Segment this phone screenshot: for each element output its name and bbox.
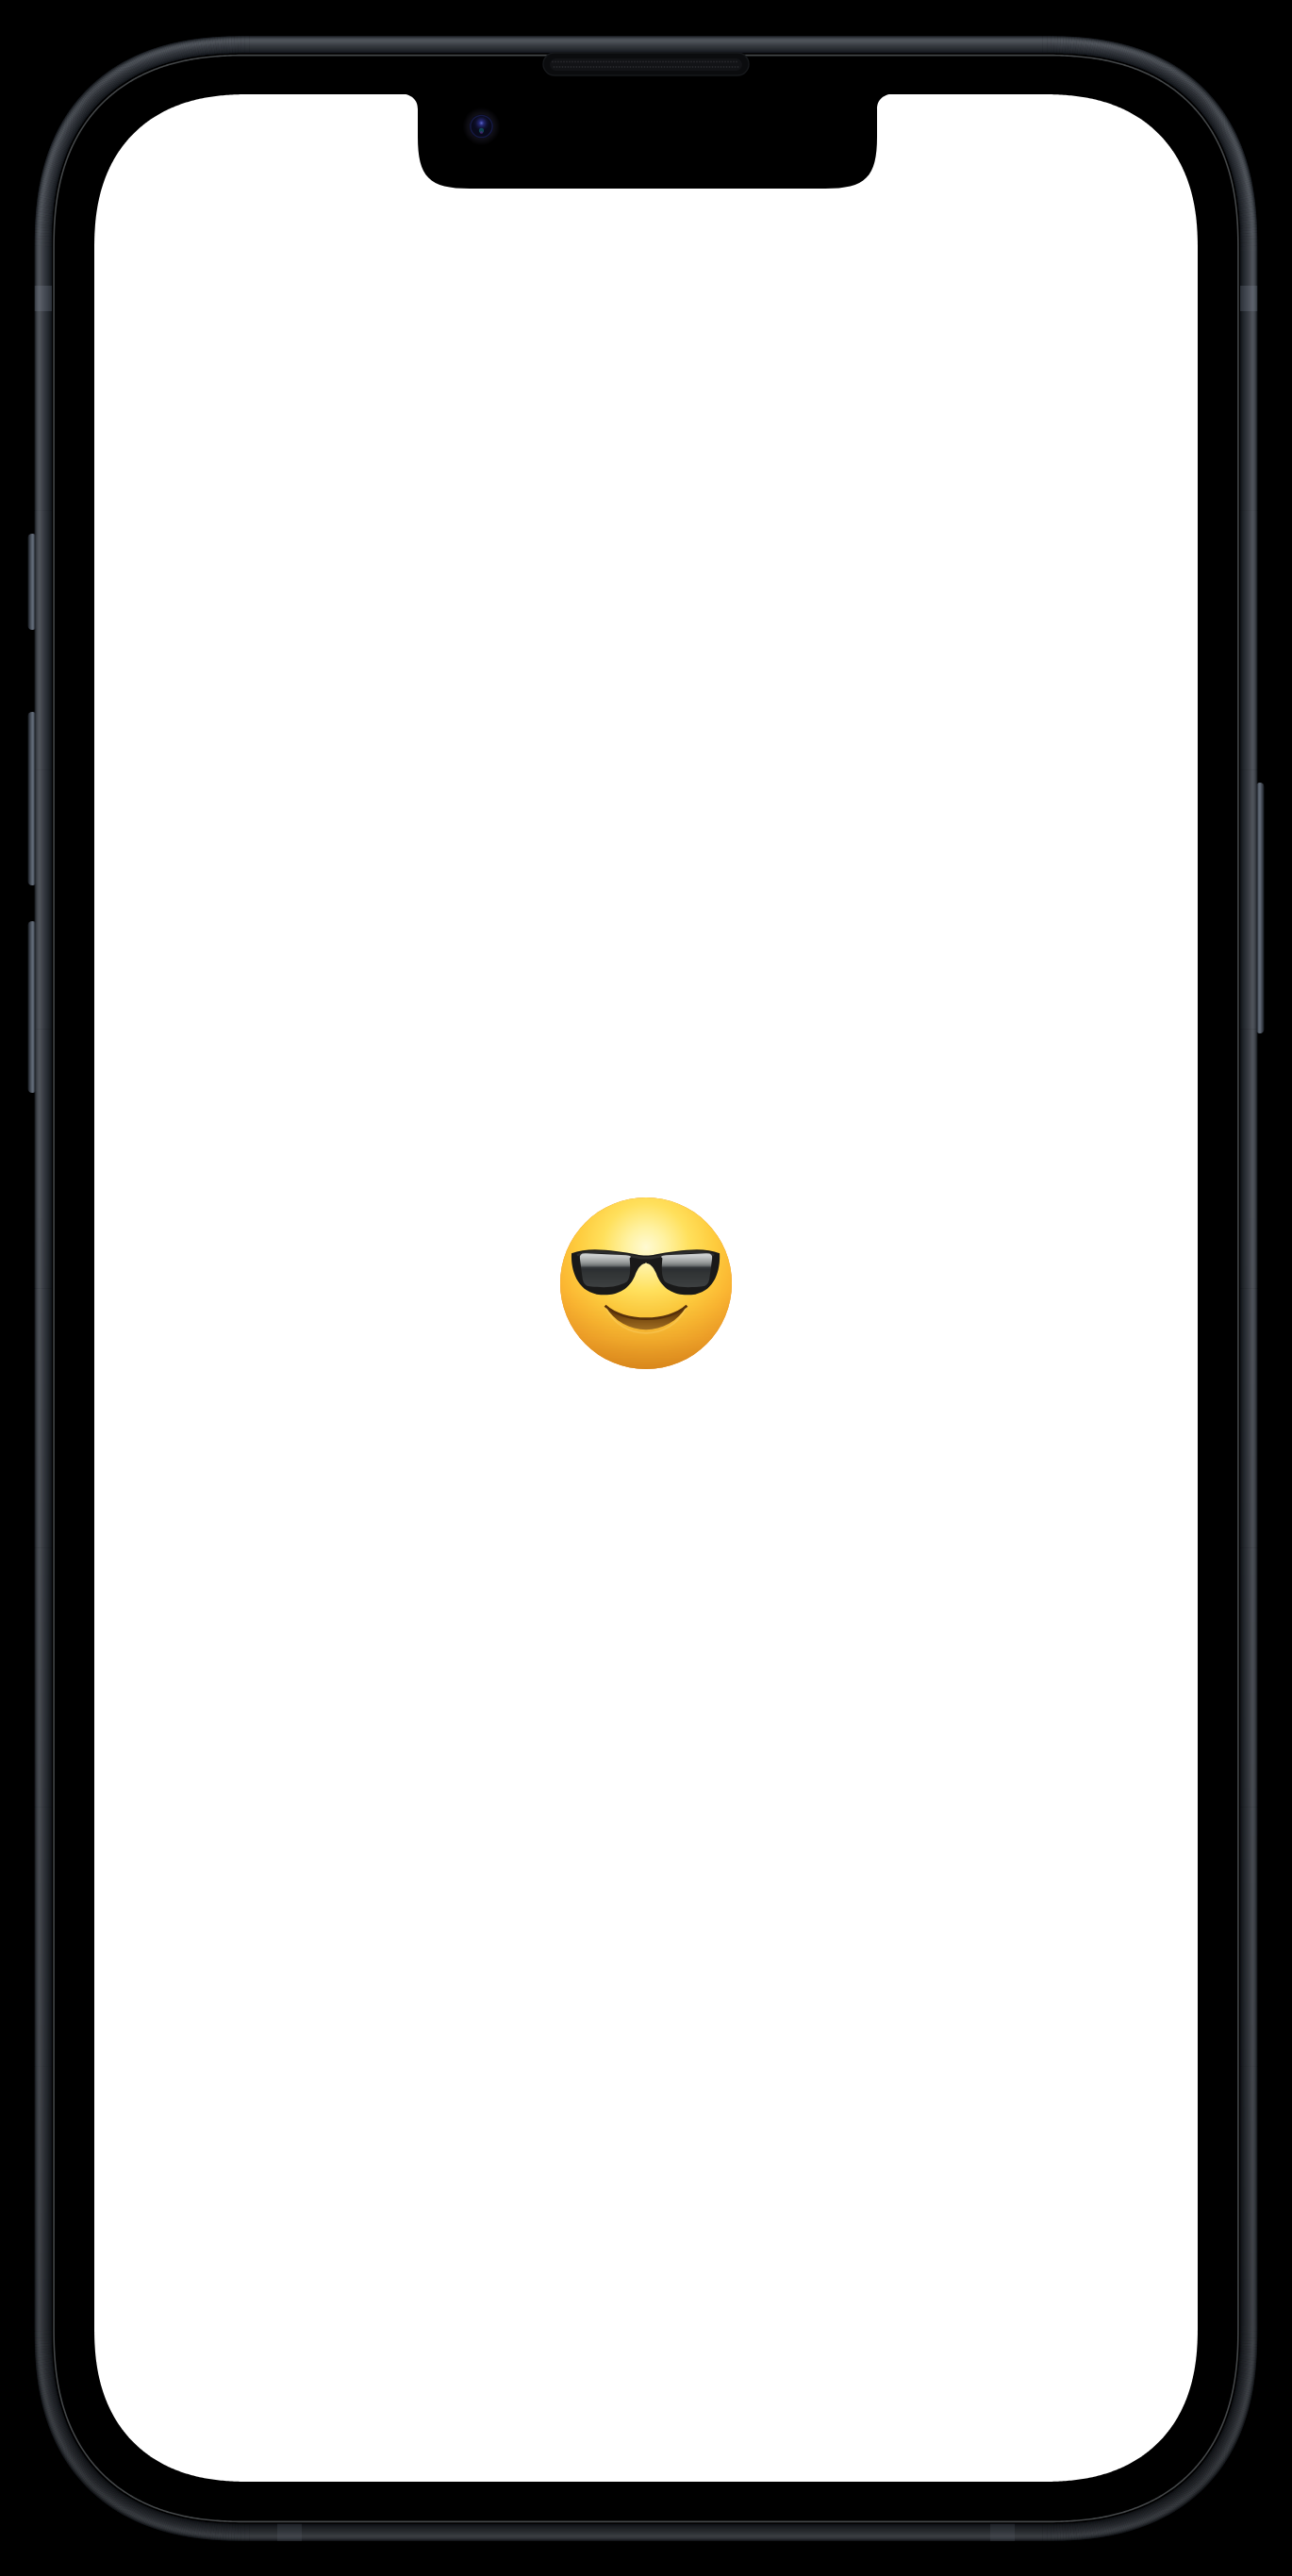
button[interactable]: Phone mockup showing the app screen xyxy=(0,0,1292,2576)
